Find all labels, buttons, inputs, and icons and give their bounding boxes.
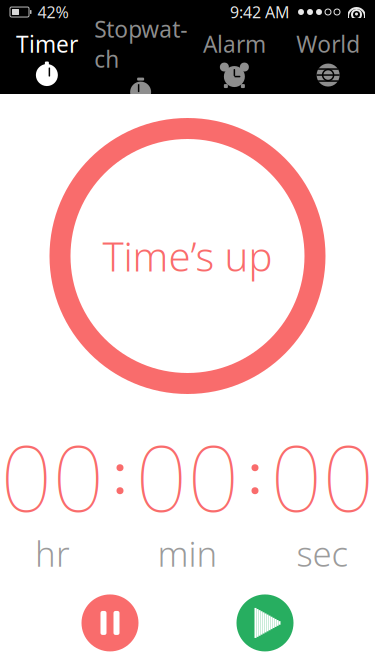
staticText: Time’s up [102,229,272,282]
button[interactable]: World [281,25,375,93]
staticText: Stopwatch [94,14,187,74]
staticText: 9:42 AM [230,1,290,23]
button[interactable]: Stopwatch [94,10,188,108]
staticText: 00 [135,416,239,536]
button[interactable]: Pause [81,594,138,651]
staticText: sec [296,530,348,576]
staticText: Timer [16,29,78,59]
staticText: 42% [37,1,68,23]
button[interactable]: Alarm [187,25,281,93]
staticText: 00 [270,416,374,536]
staticText: hr [35,530,70,576]
staticText: Alarm [203,29,266,59]
staticText: World [296,29,360,59]
button[interactable]: Start [236,594,293,651]
button[interactable]: Timer [0,25,94,93]
staticText: min [157,530,217,576]
staticText: 00 [0,416,104,536]
